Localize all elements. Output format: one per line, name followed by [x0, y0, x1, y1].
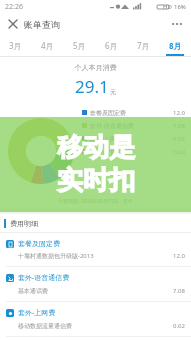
button[interactable]: More options [169, 16, 185, 32]
button[interactable]: 3月 [0, 34, 31, 56]
staticText: 12.0 [173, 109, 185, 117]
staticText: 8月 [169, 40, 182, 51]
staticText: 3月 [9, 40, 22, 51]
staticText: 29.1 [75, 75, 109, 98]
button[interactable]: 7月 [127, 34, 159, 56]
staticText: 十堰村通数据包升级版-2013 [18, 252, 94, 260]
staticText: 元 [110, 88, 116, 96]
staticText: 移动数据流量通信费 [18, 322, 72, 330]
button[interactable]: Close [6, 17, 20, 31]
button[interactable]: 套餐及固定费 [0, 233, 191, 267]
staticText: 7.08 [173, 287, 185, 295]
staticText: 10.0 [173, 148, 185, 156]
staticText: 0.02 [173, 135, 185, 143]
staticText: 实时扣 [57, 164, 135, 197]
staticText: 4月 [41, 40, 54, 51]
staticText: 套外-上网费 [90, 135, 122, 143]
staticText: 套外-上网费 [18, 308, 56, 318]
staticText: 费用明细 [10, 219, 38, 228]
staticText: 套外-语音通信费 [18, 273, 70, 283]
button[interactable]: 5月 [63, 34, 95, 56]
staticText: 12.0 [173, 252, 185, 260]
staticText: 个人本月消费 [0, 63, 191, 72]
staticText: 账单查询 [24, 19, 60, 30]
staticText: 套餐及固定费 [90, 109, 126, 117]
staticText: 5月 [73, 40, 86, 51]
button[interactable]: 套外-语音通信费 [0, 267, 191, 302]
staticText: 7月 [137, 40, 150, 51]
button[interactable]: 6月 [95, 34, 127, 56]
staticText: 套餐及固定费 [18, 239, 60, 248]
staticText: 套外-语音通信费 [90, 122, 134, 130]
button[interactable]: 8月 [159, 34, 191, 56]
staticText: 0.02 [173, 322, 185, 330]
staticText: 基本通话费 [18, 287, 48, 295]
staticText: 套外-短信彩信费 [90, 148, 134, 156]
staticText: 6月 [105, 40, 118, 51]
button[interactable]: 套外-上网费 [0, 302, 191, 337]
staticText: 计费周期: 2018年08月01日 - 至今 [0, 198, 191, 205]
staticText: 移动是 [57, 131, 135, 164]
staticText: 22:26 [5, 2, 23, 12]
staticText: 7.08 [173, 122, 185, 130]
button[interactable]: 4月 [31, 34, 63, 56]
staticText: 16% [174, 3, 186, 11]
staticText: HD [163, 3, 172, 11]
